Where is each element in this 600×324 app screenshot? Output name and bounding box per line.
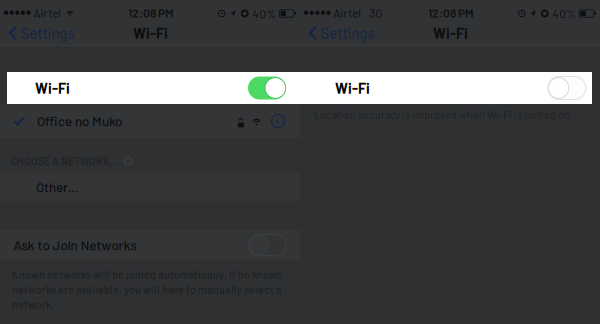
button[interactable]: Other… — [0, 173, 300, 201]
button[interactable]: Office no Muko — [0, 104, 300, 138]
staticText: Wi-Fi — [133, 24, 168, 42]
staticText: Wi-Fi — [335, 79, 370, 97]
staticText: Office no Muko — [37, 113, 122, 129]
staticText: Ask to Join Networks — [13, 237, 136, 253]
staticText: Airtel — [333, 5, 361, 20]
staticText: Wi-Fi — [35, 79, 70, 97]
button[interactable]: Wi-Fi — [0, 72, 300, 104]
button[interactable]: Settings — [300, 19, 380, 47]
staticText: 40% — [252, 6, 276, 21]
button[interactable]: Wi-Fi — [300, 72, 600, 104]
button[interactable]: Settings — [0, 19, 80, 47]
button[interactable]: Ask to Join Networks — [0, 230, 300, 260]
staticText: Location accuracy is improved when Wi-Fi… — [314, 108, 573, 121]
staticText: Wi-Fi — [433, 24, 468, 42]
staticText: 12:08 PM — [428, 5, 474, 20]
staticText: Other… — [36, 179, 79, 195]
staticText: 12:08 PM — [128, 5, 174, 20]
staticText: Known networks will be joined automatica… — [12, 268, 283, 311]
staticText: 40% — [552, 6, 576, 21]
staticText: 3G — [369, 5, 382, 20]
staticText: CHOOSE A NETWORK… — [11, 155, 119, 167]
staticText: Settings — [320, 24, 374, 42]
staticText: Settings — [20, 24, 74, 42]
staticText: Airtel — [33, 5, 61, 20]
